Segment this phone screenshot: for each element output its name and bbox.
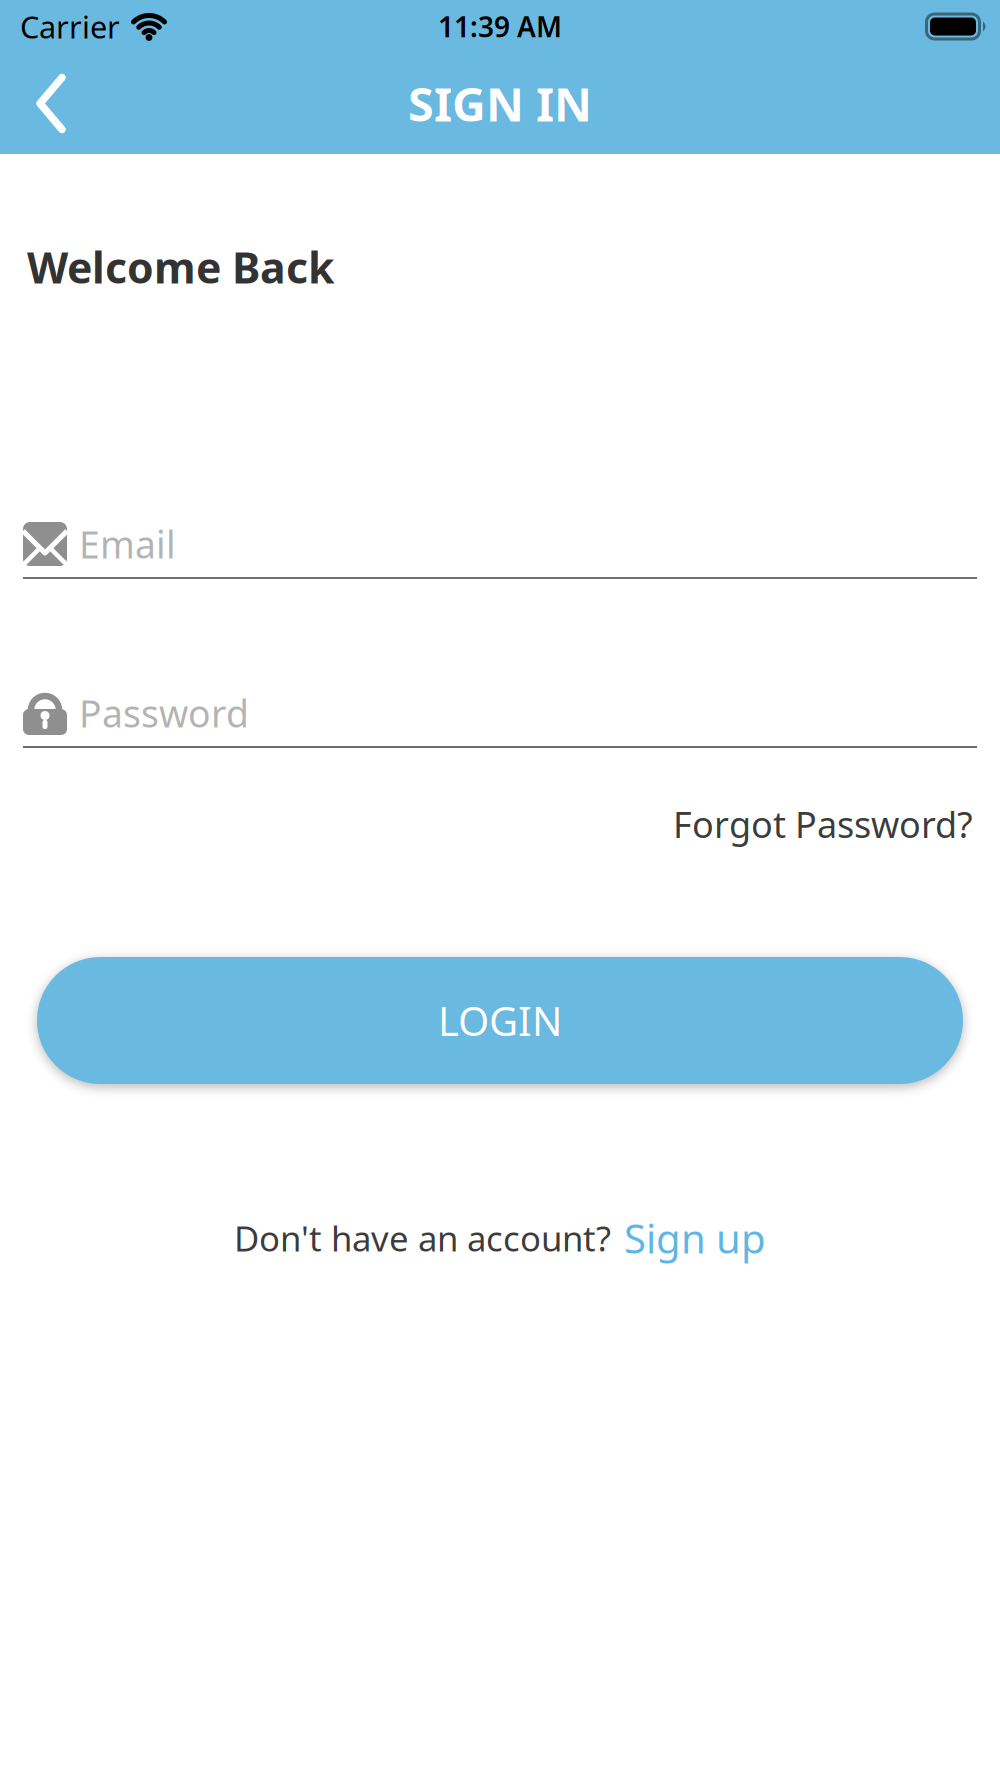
staticText: Sign up (624, 1211, 766, 1264)
button[interactable]: Email (0, 522, 1000, 579)
button[interactable]: LOGIN (0, 957, 1000, 1084)
staticText: Email (79, 519, 176, 569)
staticText: 11:39 AM (438, 8, 562, 45)
button[interactable]: Password (0, 691, 1000, 748)
staticText: Carrier (20, 6, 120, 47)
staticText: LOGIN (438, 994, 562, 1047)
button[interactable] (0, 73, 88, 133)
staticText: Password (79, 688, 249, 738)
staticText: Don't have an account? (234, 1215, 611, 1261)
staticText: Forgot Password? (673, 800, 973, 848)
button[interactable]: Sign up (624, 1211, 766, 1264)
staticText: Welcome Back (27, 239, 334, 295)
staticText: SIGN IN (408, 72, 592, 134)
button[interactable]: Forgot Password? (673, 800, 973, 848)
